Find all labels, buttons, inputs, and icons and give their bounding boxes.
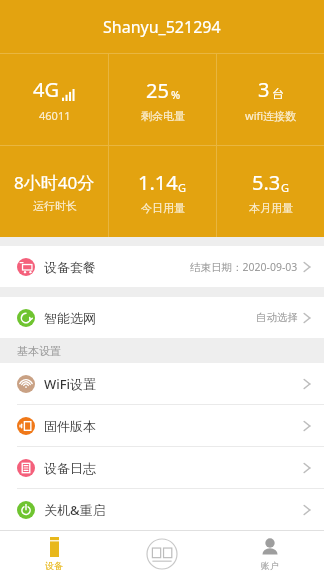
staticText: 自动选择	[256, 311, 298, 324]
staticText: 关机&重启	[44, 501, 106, 519]
staticText: 设备套餐	[44, 259, 96, 275]
staticText: 4G	[33, 76, 59, 103]
staticText: 台	[272, 86, 284, 101]
staticText: WiFi设置	[44, 375, 97, 393]
button[interactable]: 设备日志	[0, 447, 324, 488]
staticText: G	[178, 180, 187, 195]
staticText: 结束日期：2020-09-03	[190, 260, 298, 274]
staticText: 25	[146, 77, 169, 104]
staticText: 固件版本	[44, 418, 96, 434]
button[interactable]: 关机&重启	[0, 489, 324, 530]
staticText: G	[281, 180, 290, 195]
staticText: 运行时长	[33, 199, 77, 213]
staticText: 3	[258, 76, 270, 103]
button[interactable]: 设备套餐	[0, 246, 324, 287]
staticText: wifi连接数	[245, 108, 297, 123]
staticText: 智能选网	[44, 310, 96, 326]
button[interactable]: 固件版本	[0, 405, 324, 446]
staticText: 账户	[261, 560, 279, 571]
staticText: 今日用量	[141, 201, 185, 215]
staticText: Shanyu_521294	[103, 16, 221, 38]
staticText: 剩余电量	[141, 109, 185, 123]
button[interactable]: 闪鱼	[108, 531, 216, 576]
staticText: 本月用量	[249, 201, 293, 215]
button[interactable]: 账户	[216, 531, 324, 576]
staticText: 设备日志	[44, 460, 96, 476]
button[interactable]: 智能选网	[0, 297, 324, 338]
staticText: 5.3	[252, 169, 281, 196]
button[interactable]: 设备	[0, 531, 108, 576]
staticText: 设备	[45, 560, 63, 571]
staticText: 46011	[39, 108, 71, 123]
staticText: %	[171, 87, 181, 102]
button[interactable]: WiFi设置	[0, 363, 324, 404]
staticText: 基本设置	[17, 344, 61, 358]
staticText: 1.14	[138, 169, 178, 196]
staticText: 8小时40分	[14, 171, 95, 194]
